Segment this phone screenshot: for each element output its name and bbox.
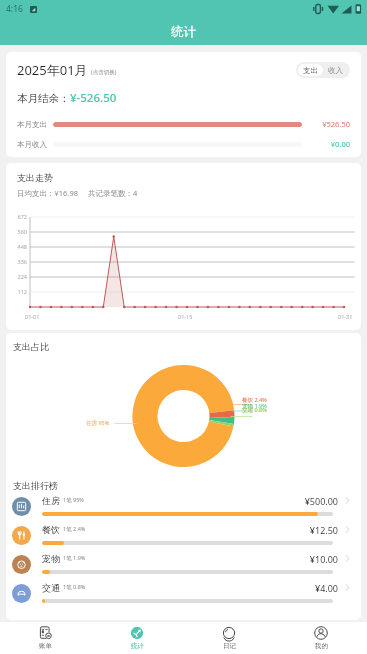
button[interactable]: 宠物 bbox=[12, 550, 355, 579]
staticText: (点击切换) bbox=[91, 68, 117, 76]
staticText: ¥-526.50 bbox=[70, 90, 117, 106]
staticText: 112 bbox=[11, 288, 27, 295]
staticText: 餐饮 bbox=[42, 524, 60, 535]
button[interactable]: 日记 bbox=[183, 622, 275, 654]
button[interactable]: 交通 bbox=[12, 579, 355, 608]
staticText: 宠物 bbox=[42, 553, 60, 564]
staticText: 1笔 1.9% bbox=[63, 554, 86, 562]
staticText: ¥526.50 bbox=[308, 119, 350, 129]
staticText: 01-15 bbox=[178, 313, 193, 320]
staticText: 统计 bbox=[131, 642, 144, 650]
staticText: ¥12.50 bbox=[309, 524, 338, 536]
staticText: ¥10.00 bbox=[309, 553, 338, 565]
staticText: 448 bbox=[11, 243, 27, 250]
staticText: 本月结余： bbox=[17, 92, 70, 105]
staticText: 支出走势 bbox=[17, 172, 53, 183]
staticText: 日记 bbox=[223, 642, 236, 650]
staticText: 本月支出 bbox=[17, 120, 47, 129]
staticText: 交通 0.8% bbox=[242, 406, 267, 414]
button[interactable]: 账单 bbox=[0, 622, 91, 654]
staticText: 住房 bbox=[42, 495, 60, 506]
staticText: 本月收入 bbox=[17, 140, 47, 149]
staticText: ¥0.00 bbox=[308, 139, 350, 149]
staticText: 4:16 bbox=[6, 3, 23, 15]
button[interactable]: 收入 bbox=[323, 64, 348, 76]
button[interactable]: 住房 bbox=[12, 492, 355, 521]
staticText: 账单 bbox=[39, 642, 52, 650]
staticText: 560 bbox=[11, 228, 27, 235]
button[interactable]: 统计 bbox=[91, 622, 183, 654]
staticText: ¥500.00 bbox=[304, 495, 338, 507]
button[interactable]: 支出 bbox=[298, 64, 323, 76]
staticText: 1笔 0.8% bbox=[63, 583, 86, 591]
staticText: 日均支出：¥16.98 bbox=[17, 188, 78, 198]
staticText: 餐饮 2.4% bbox=[242, 396, 267, 404]
staticText: ¥4.00 bbox=[314, 582, 338, 594]
staticText: 672 bbox=[11, 213, 27, 220]
staticText: 收入 bbox=[328, 66, 343, 75]
staticText: 我的 bbox=[315, 642, 328, 650]
staticText: 1笔 95% bbox=[63, 496, 84, 504]
button[interactable]: 餐饮 bbox=[12, 521, 355, 550]
staticText: 住房 95% bbox=[86, 419, 110, 427]
staticText: 2025年01月 bbox=[17, 61, 88, 79]
staticText: 01-31 bbox=[338, 313, 353, 320]
staticText: 宠物 1.9% bbox=[242, 402, 267, 410]
button[interactable]: 我的 bbox=[275, 622, 367, 654]
staticText: 1笔 2.4% bbox=[63, 525, 86, 533]
staticText: 统计 bbox=[171, 24, 196, 40]
staticText: 支出排行榜 bbox=[13, 480, 58, 491]
staticText: 01-01 bbox=[25, 313, 40, 320]
staticText: 交通 bbox=[42, 582, 60, 593]
staticText: 336 bbox=[11, 258, 27, 265]
staticText: 支出占比 bbox=[13, 341, 49, 352]
staticText: 224 bbox=[11, 273, 27, 280]
staticText: 支出 bbox=[303, 66, 318, 75]
staticText: 共记录笔数：4 bbox=[88, 188, 138, 198]
